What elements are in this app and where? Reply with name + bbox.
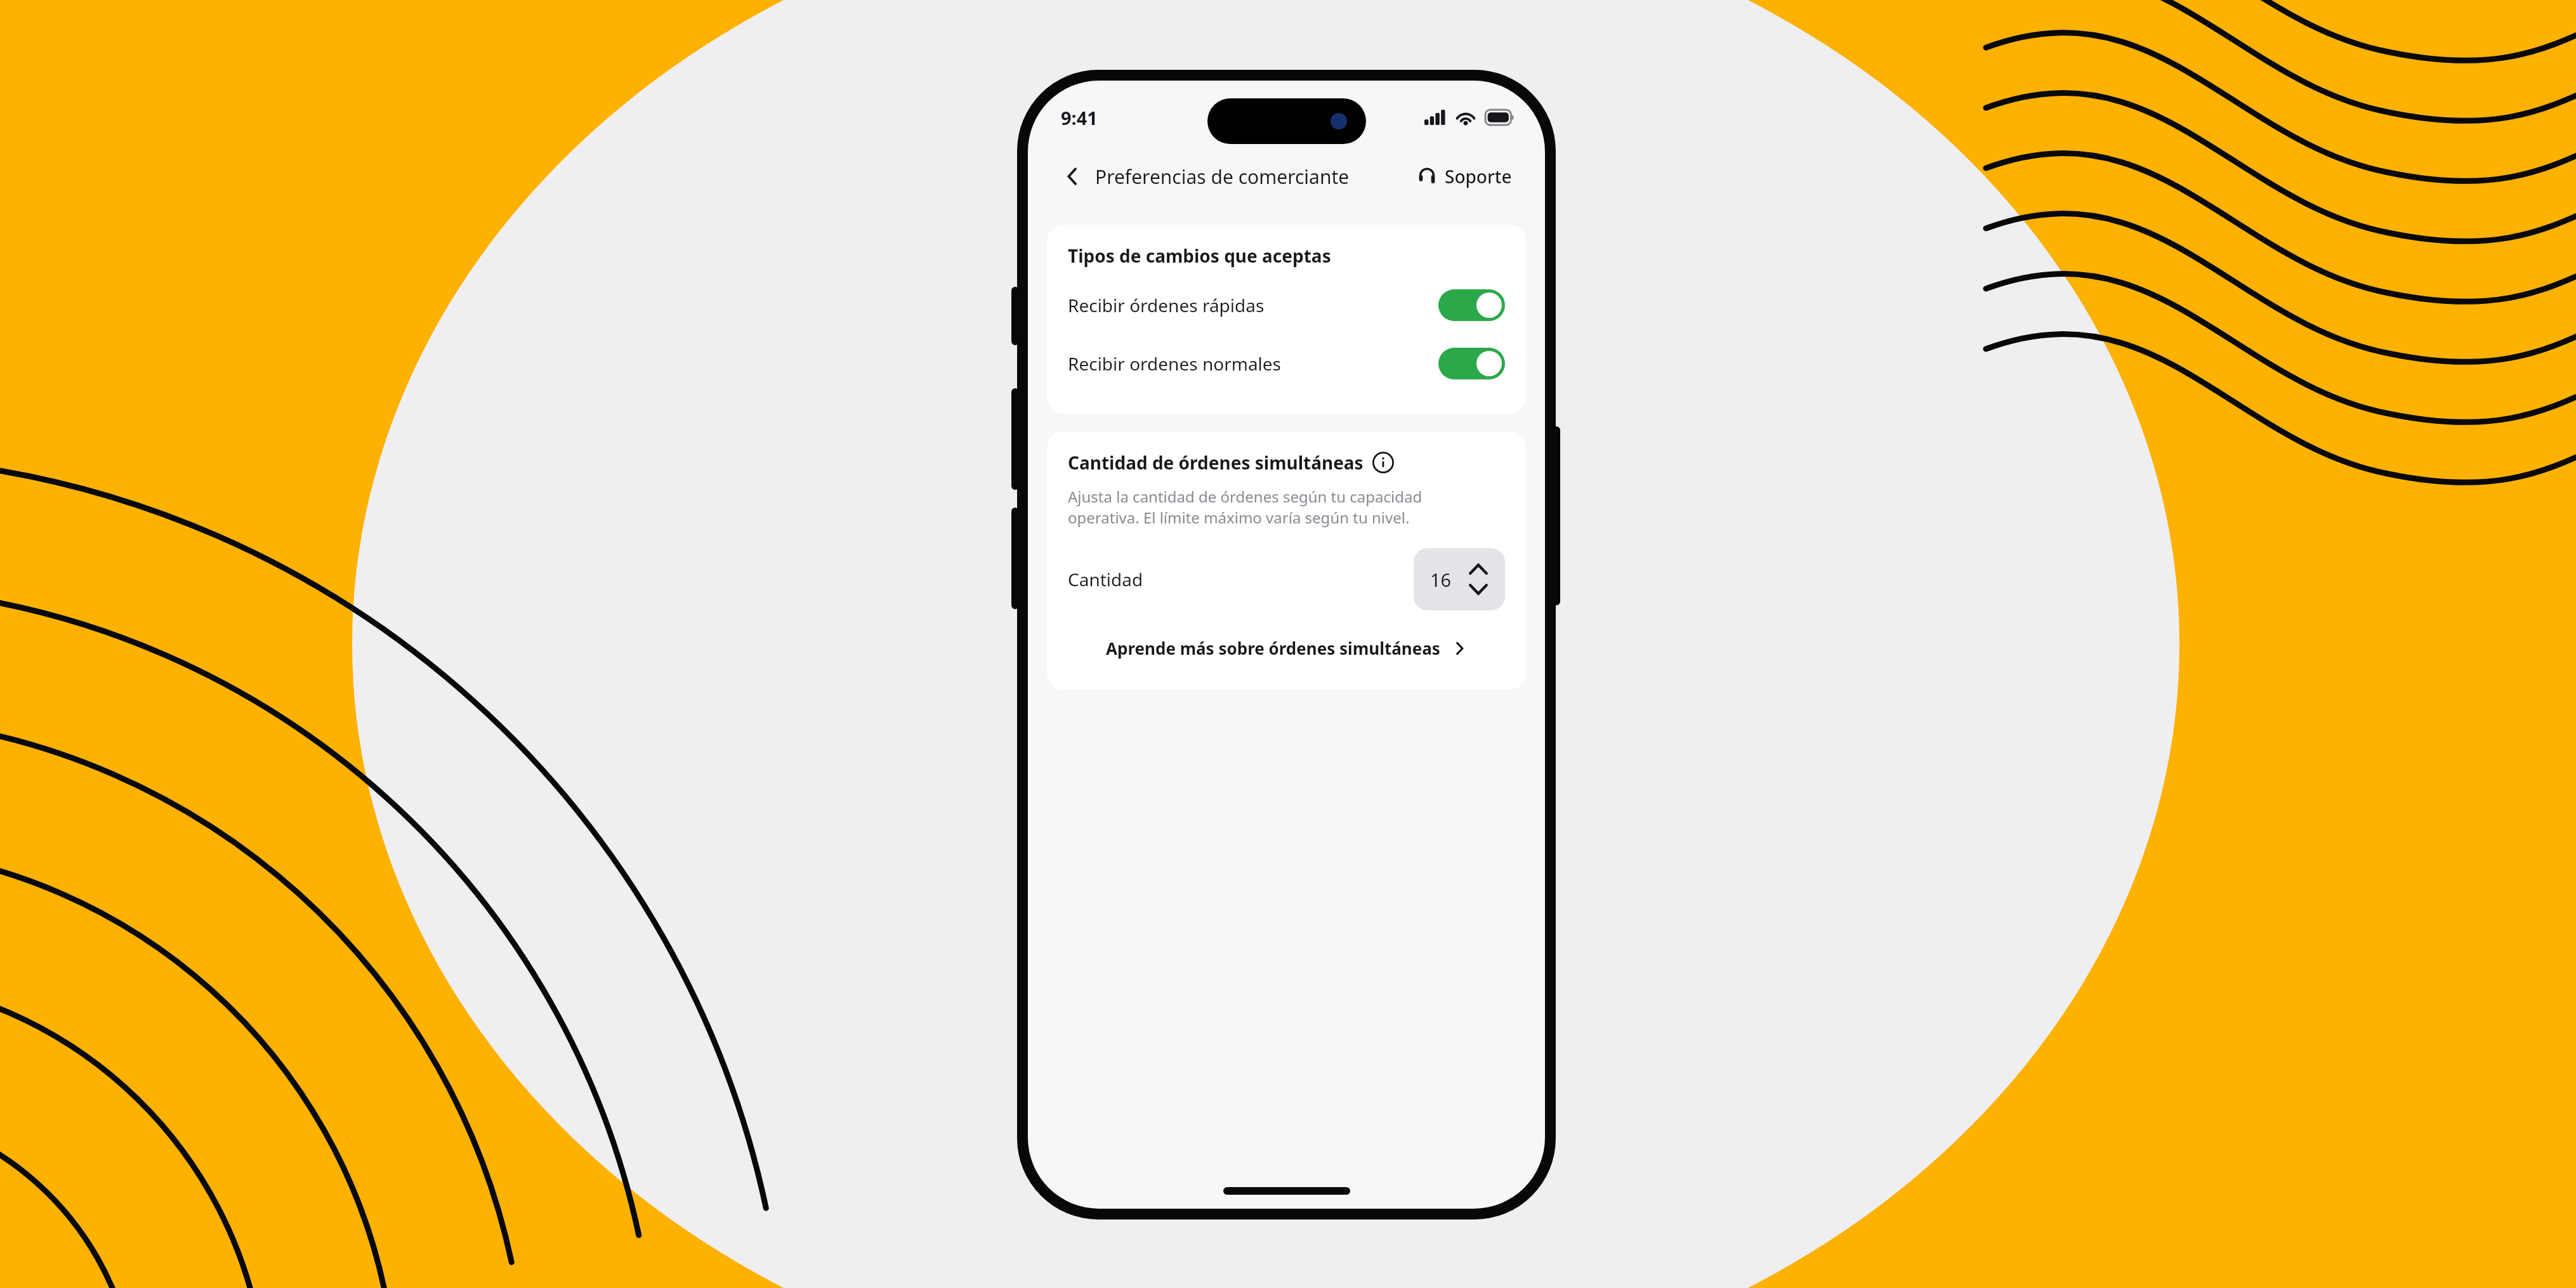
staticText: 9:41 xyxy=(1061,105,1098,130)
staticText: Cantidad xyxy=(1068,567,1143,591)
button[interactable]: Recibir órdenes rápidas xyxy=(1068,289,1505,321)
staticText: Tipos de cambios que aceptas xyxy=(1068,244,1331,268)
button[interactable]: Atrás xyxy=(1057,161,1088,192)
staticText: Soporte xyxy=(1445,164,1512,188)
button[interactable]: Más información xyxy=(1372,452,1394,473)
button[interactable]: Recibir ordenes normales xyxy=(1068,348,1505,379)
staticText: Recibir ordenes normales xyxy=(1068,352,1282,376)
button[interactable]: Soporte xyxy=(1413,161,1516,192)
staticText: 16 xyxy=(1430,567,1452,592)
staticText: Ajusta la cantidad de órdenes según tu c… xyxy=(1068,486,1423,528)
staticText: Aprende más sobre órdenes simultáneas xyxy=(1106,637,1440,659)
staticText: Cantidad de órdenes simultáneas xyxy=(1068,450,1364,475)
button[interactable]: Aprende más sobre órdenes simultáneas xyxy=(1068,631,1505,666)
button[interactable]: 16 xyxy=(1414,548,1505,610)
staticText: Recibir órdenes rápidas xyxy=(1068,293,1265,317)
staticText: Preferencias de comerciante xyxy=(1095,164,1350,190)
